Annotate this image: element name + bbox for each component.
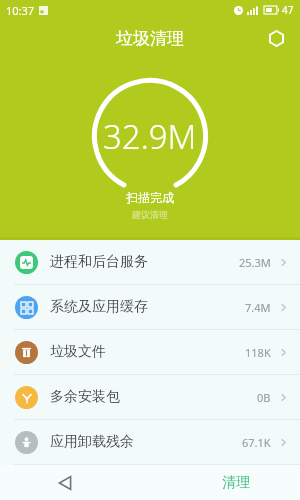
button[interactable]: Settings <box>262 24 290 52</box>
staticText: 多余安装包 <box>50 388 120 406</box>
staticText: 应用卸载残余 <box>50 433 134 451</box>
staticText: 扫描完成 <box>126 190 174 205</box>
button[interactable]: 多余安装包 <box>0 375 300 419</box>
staticText: 47 <box>282 3 294 17</box>
staticText: 10:37 <box>6 3 35 18</box>
button[interactable]: 应用卸载残余 <box>0 420 300 464</box>
button[interactable]: 垃圾文件 <box>0 330 300 374</box>
staticText: 0B <box>257 390 271 405</box>
staticText: 67.1K <box>242 435 271 450</box>
staticText: 建议清理 <box>132 209 168 220</box>
staticText: 25.3M <box>239 255 271 270</box>
button[interactable]: Back <box>48 466 82 500</box>
staticText: 进程和后台服务 <box>50 253 148 271</box>
button[interactable]: 清理 <box>216 470 256 496</box>
staticText: 118K <box>245 345 271 360</box>
button[interactable]: 进程和后台服务 <box>0 240 300 284</box>
staticText: 32.9M <box>103 114 197 159</box>
staticText: 7.4M <box>245 300 271 315</box>
staticText: 系统及应用缓存 <box>50 298 148 316</box>
staticText: 垃圾清理 <box>116 28 184 49</box>
staticText: 清理 <box>222 474 250 492</box>
button[interactable]: 系统及应用缓存 <box>0 285 300 329</box>
staticText: 垃圾文件 <box>50 343 106 361</box>
